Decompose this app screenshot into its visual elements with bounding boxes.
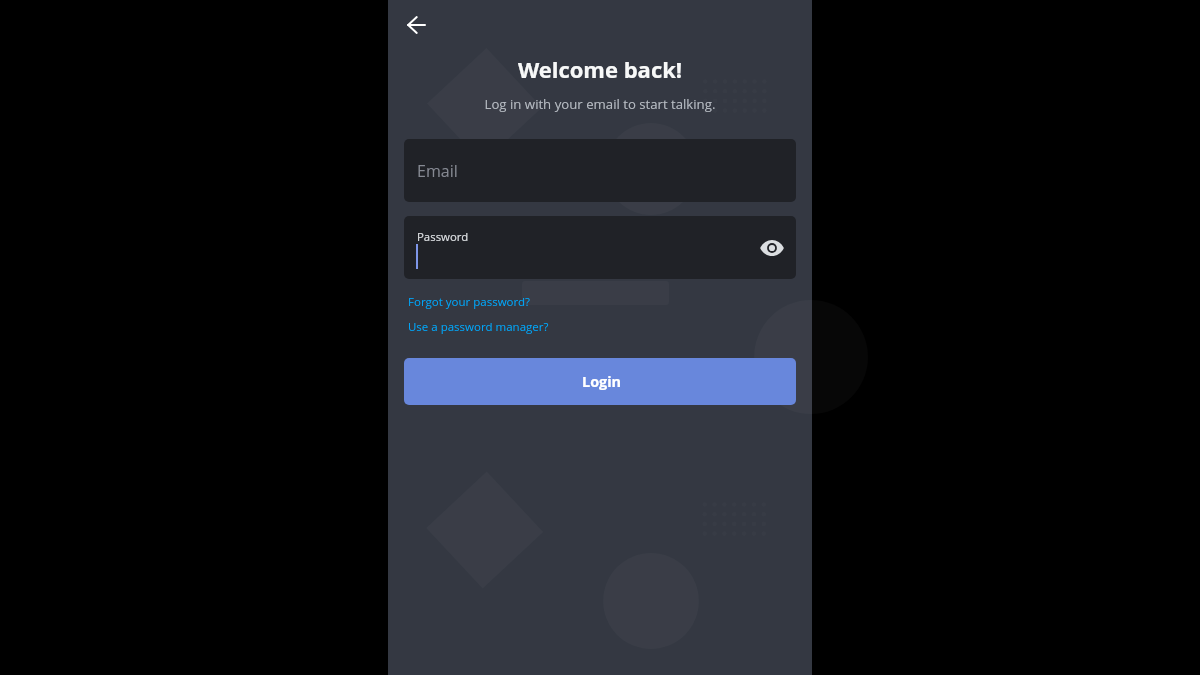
- button[interactable]: Use a password manager?: [404, 317, 553, 337]
- staticText: Email: [417, 160, 458, 182]
- button[interactable]: Login: [404, 358, 796, 405]
- staticText: Login: [582, 372, 622, 392]
- staticText: Welcome back!: [388, 54, 812, 84]
- button[interactable]: Forgot your password?: [404, 292, 534, 312]
- button[interactable]: Email: [404, 139, 796, 202]
- button[interactable]: Show password: [756, 232, 788, 264]
- staticText: Password: [417, 229, 469, 245]
- staticText: Log in with your email to start talking.: [388, 95, 812, 113]
- button[interactable]: Back: [397, 5, 437, 45]
- button[interactable]: Password: [404, 216, 796, 279]
